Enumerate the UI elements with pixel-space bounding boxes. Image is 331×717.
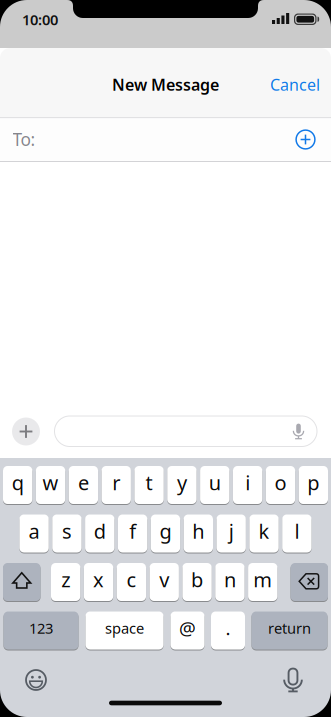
button[interactable] bbox=[290, 562, 328, 601]
button[interactable]: t bbox=[134, 465, 164, 504]
button[interactable]: z bbox=[51, 562, 80, 601]
staticText: k bbox=[258, 518, 269, 544]
staticText: 123 bbox=[29, 618, 53, 638]
staticText: h bbox=[192, 518, 204, 544]
staticText: w bbox=[42, 469, 58, 496]
staticText: return bbox=[268, 618, 311, 638]
button[interactable]: l bbox=[282, 514, 312, 553]
staticText: u bbox=[209, 469, 221, 496]
staticText: y bbox=[177, 469, 187, 496]
staticText: Cancel bbox=[270, 74, 320, 95]
button[interactable]: Cancel bbox=[270, 64, 320, 104]
button[interactable] bbox=[12, 417, 40, 445]
staticText: r bbox=[112, 469, 120, 496]
staticText: f bbox=[129, 518, 136, 544]
button[interactable] bbox=[54, 415, 317, 447]
staticText: g bbox=[159, 518, 171, 544]
staticText: b bbox=[191, 566, 203, 593]
button[interactable]: o bbox=[266, 465, 295, 504]
button[interactable]: To: bbox=[0, 118, 331, 160]
button[interactable]: n bbox=[215, 562, 245, 601]
button[interactable]: m bbox=[248, 562, 277, 601]
staticText: 10:00 bbox=[22, 10, 58, 29]
button[interactable]: p bbox=[299, 465, 328, 504]
button[interactable]: g bbox=[151, 514, 180, 553]
button[interactable]: u bbox=[200, 465, 229, 504]
button[interactable] bbox=[3, 562, 40, 601]
button[interactable]: w bbox=[36, 465, 65, 504]
button[interactable]: k bbox=[249, 514, 279, 553]
button[interactable]: j bbox=[216, 514, 246, 553]
button[interactable]: @ bbox=[170, 611, 204, 650]
button[interactable] bbox=[21, 665, 51, 695]
staticText: t bbox=[146, 469, 153, 496]
button[interactable]: e bbox=[69, 465, 98, 504]
staticText: o bbox=[274, 469, 286, 496]
button[interactable]: y bbox=[167, 465, 197, 504]
staticText: . bbox=[225, 616, 230, 640]
staticText: To: bbox=[12, 128, 35, 151]
staticText: d bbox=[94, 518, 106, 544]
button[interactable]: v bbox=[150, 562, 179, 601]
staticText: j bbox=[229, 518, 234, 544]
staticText: s bbox=[62, 518, 72, 544]
button[interactable]: q bbox=[3, 465, 32, 504]
button[interactable]: x bbox=[84, 562, 113, 601]
button[interactable]: i bbox=[233, 465, 262, 504]
button[interactable]: . bbox=[211, 611, 245, 650]
button[interactable]: 123 bbox=[3, 611, 78, 650]
button[interactable] bbox=[293, 127, 318, 152]
staticText: i bbox=[245, 469, 250, 496]
staticText: New Message bbox=[112, 74, 219, 95]
button[interactable]: f bbox=[118, 514, 147, 553]
staticText: p bbox=[307, 469, 319, 496]
staticText: q bbox=[12, 469, 24, 496]
staticText: v bbox=[159, 566, 169, 593]
staticText: e bbox=[78, 469, 89, 496]
button[interactable]: c bbox=[117, 562, 146, 601]
button[interactable]: s bbox=[52, 514, 82, 553]
button[interactable]: space bbox=[85, 611, 163, 650]
staticText: c bbox=[126, 566, 136, 593]
button[interactable]: d bbox=[85, 514, 114, 553]
button[interactable]: r bbox=[102, 465, 131, 504]
button[interactable]: return bbox=[251, 611, 327, 650]
staticText: m bbox=[253, 566, 272, 593]
button[interactable] bbox=[278, 666, 308, 696]
staticText: l bbox=[294, 518, 299, 544]
button[interactable]: h bbox=[184, 514, 213, 553]
staticText: a bbox=[29, 518, 40, 544]
staticText: x bbox=[93, 566, 104, 593]
staticText: z bbox=[61, 566, 70, 593]
staticText: @ bbox=[179, 616, 196, 640]
staticText: space bbox=[105, 618, 144, 638]
staticText: n bbox=[224, 566, 236, 593]
button[interactable]: b bbox=[182, 562, 212, 601]
button[interactable]: a bbox=[19, 514, 49, 553]
